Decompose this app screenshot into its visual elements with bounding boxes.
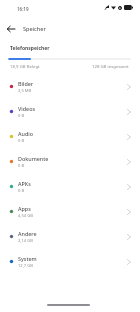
staticText: 3,5 MB — [18, 88, 32, 94]
staticText: Audio — [18, 130, 34, 137]
staticText: APKs — [18, 180, 31, 187]
button[interactable]: Videos — [0, 100, 140, 125]
staticText: 16:19 — [17, 6, 29, 12]
button[interactable]: Dokumente — [0, 150, 140, 175]
staticText: 0 B — [18, 113, 25, 119]
button[interactable]: Apps — [0, 200, 140, 225]
staticText: Videos — [18, 105, 36, 112]
button[interactable]: Andere — [0, 225, 140, 250]
button[interactable]: System — [0, 250, 140, 275]
staticText: 18,9 GB Belegt — [10, 63, 40, 69]
staticText: Apps — [18, 205, 31, 212]
button[interactable]: Audio — [0, 125, 140, 150]
staticText: System — [18, 255, 37, 262]
staticText: 2,14 GB — [18, 238, 33, 244]
button[interactable]: Zurück — [3, 21, 19, 37]
staticText: Andere — [18, 230, 37, 237]
staticText: 0 B — [18, 138, 25, 144]
staticText: Telefonspeicher — [10, 45, 50, 52]
button[interactable]: APKs — [0, 175, 140, 200]
staticText: 4,54 GB — [18, 213, 33, 219]
staticText: 12,7 GB — [18, 263, 33, 269]
staticText: 128 GB insgesamt — [92, 63, 129, 69]
staticText: 0 B — [18, 188, 25, 194]
staticText: 0 B — [18, 163, 25, 169]
staticText: Bilder — [18, 80, 34, 87]
staticText: Speicher — [23, 25, 46, 32]
staticText: Dokumente — [18, 155, 49, 162]
button[interactable]: Bilder — [0, 75, 140, 100]
